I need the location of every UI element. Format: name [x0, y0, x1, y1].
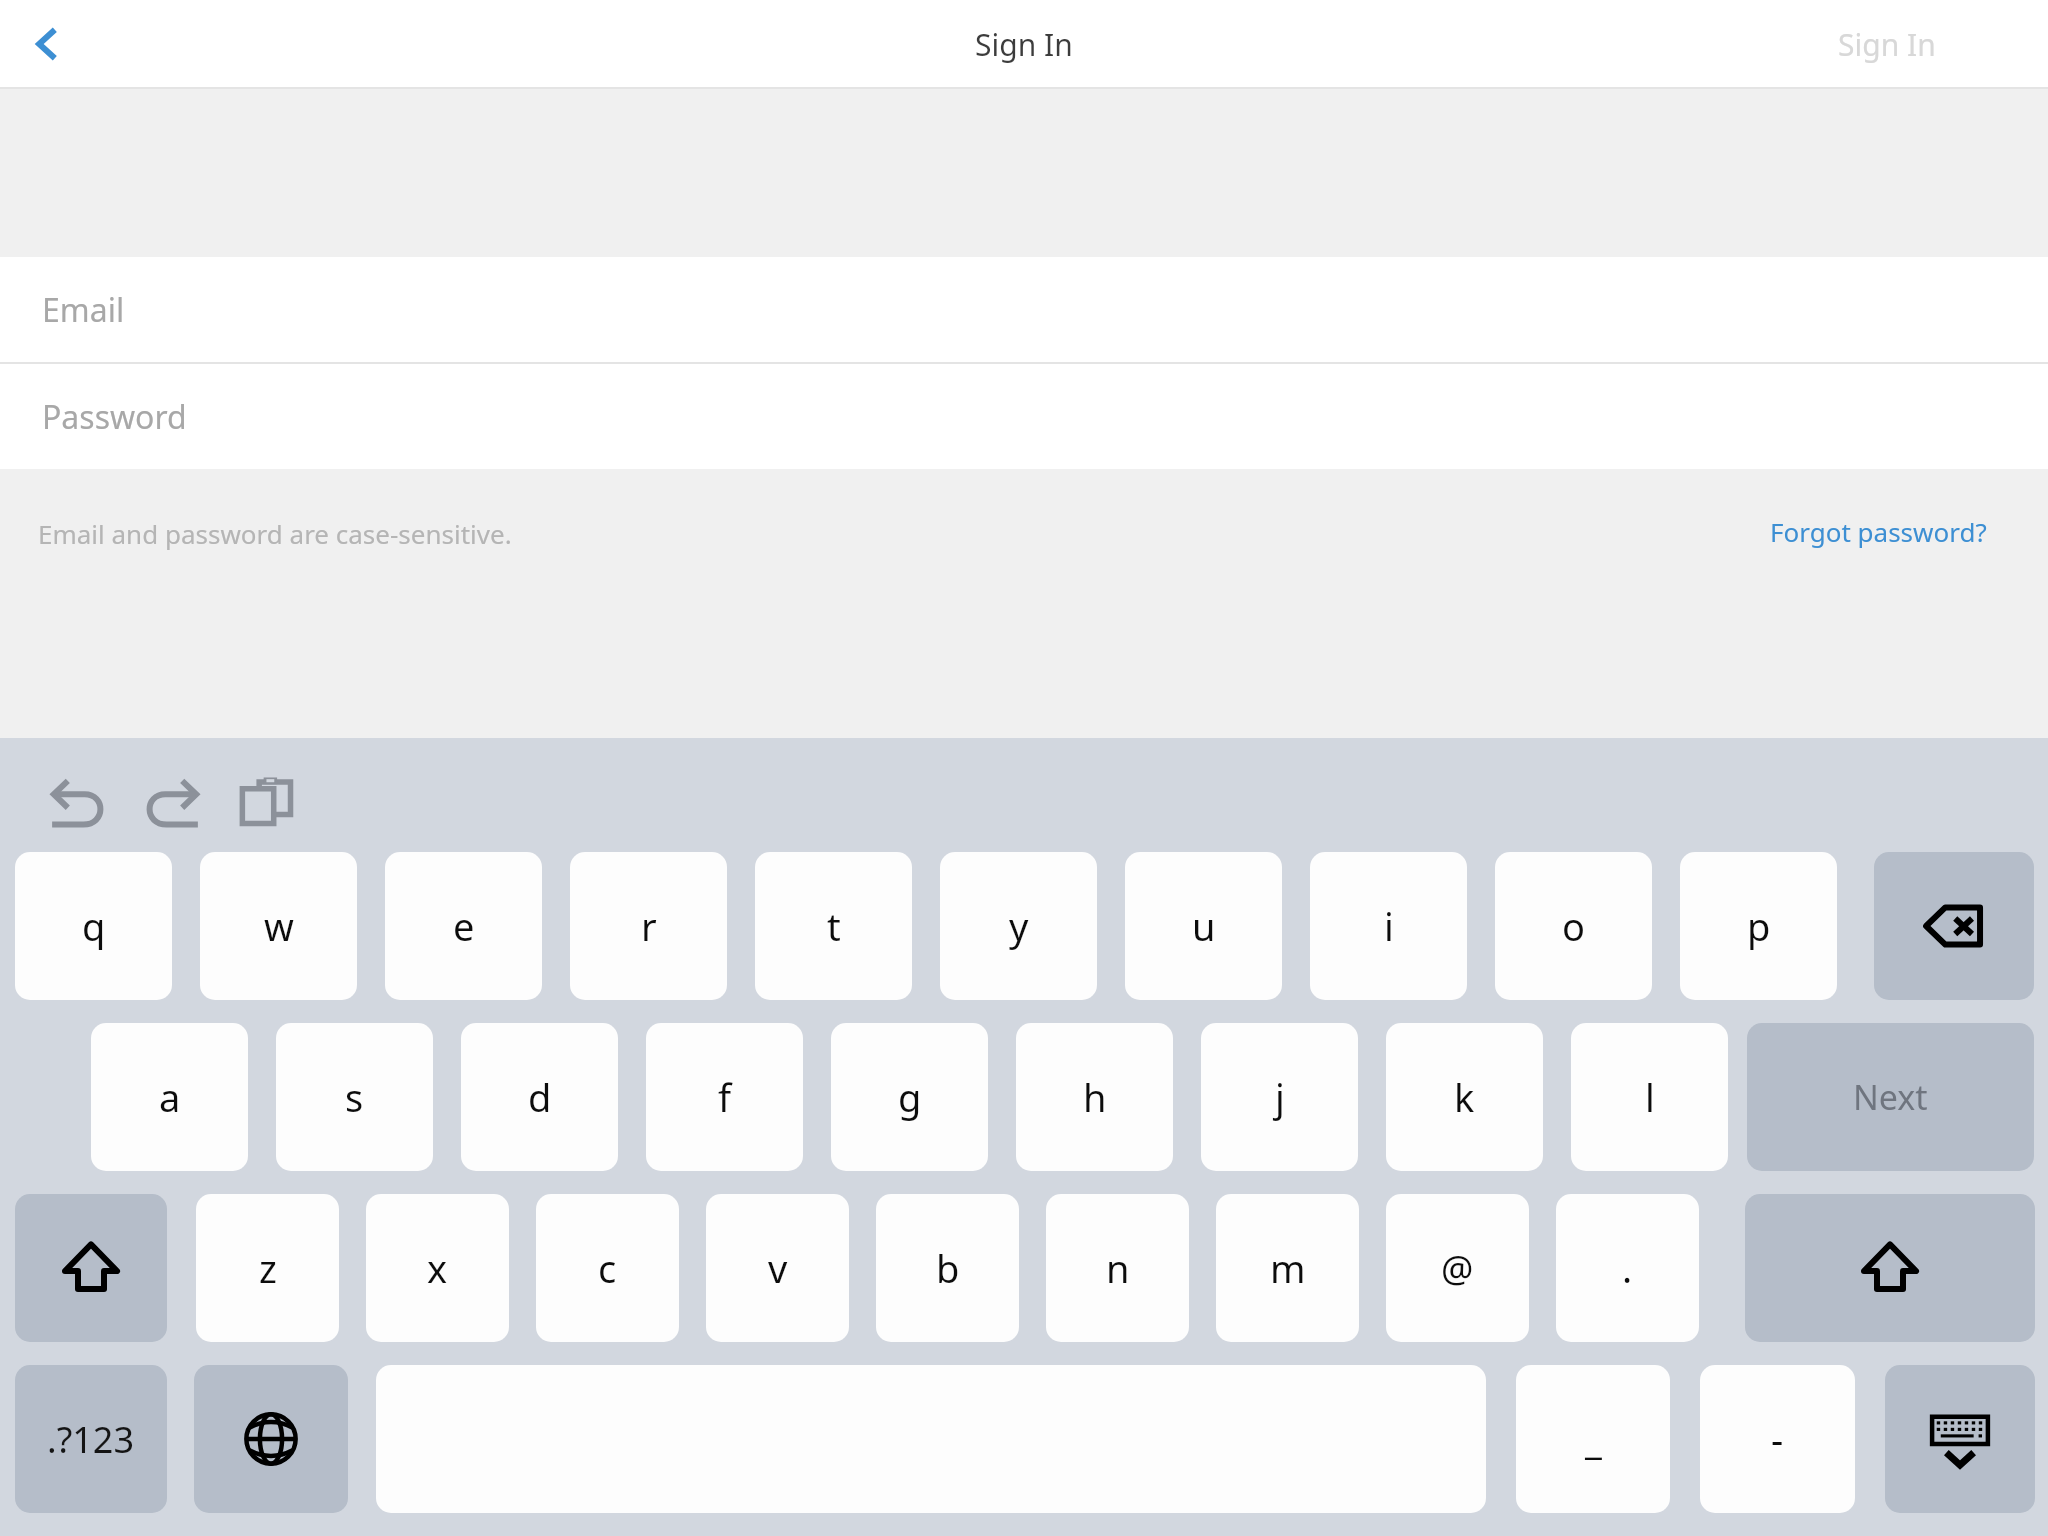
staticText: _ [1585, 1413, 1602, 1465]
staticText: r [641, 900, 657, 952]
staticText: g [898, 1071, 922, 1123]
button[interactable]: Password [0, 364, 2048, 469]
staticText: t [827, 900, 841, 952]
button[interactable]: . [1556, 1194, 1699, 1342]
staticText: u [1192, 900, 1216, 952]
staticText: v [768, 1242, 788, 1294]
button[interactable]: n [1046, 1194, 1189, 1342]
button[interactable]: v [706, 1194, 849, 1342]
staticText: l [1645, 1071, 1655, 1123]
staticText: i [1384, 900, 1394, 952]
button[interactable]: h [1016, 1023, 1173, 1171]
staticText: w [264, 900, 294, 952]
button[interactable]: l [1571, 1023, 1728, 1171]
button[interactable]: a [91, 1023, 248, 1171]
staticText: z [259, 1242, 277, 1294]
button[interactable]: Undo [40, 762, 118, 840]
button[interactable]: j [1201, 1023, 1358, 1171]
button[interactable]: Redo [132, 762, 210, 840]
button[interactable]: Sign In [1838, 0, 2048, 88]
staticText: k [1454, 1071, 1475, 1123]
staticText: f [718, 1071, 732, 1123]
button[interactable]: w [200, 852, 357, 1000]
button[interactable]: Next [1747, 1023, 2034, 1171]
staticText: s [345, 1071, 364, 1123]
staticText: m [1270, 1242, 1306, 1294]
button[interactable]: @ [1386, 1194, 1529, 1342]
staticText: . [1622, 1242, 1633, 1294]
button[interactable]: c [536, 1194, 679, 1342]
button[interactable]: r [570, 852, 727, 1000]
button[interactable]: q [15, 852, 172, 1000]
button[interactable]: x [366, 1194, 509, 1342]
staticText: .?123 [47, 1415, 135, 1464]
staticText: - [1771, 1413, 1784, 1465]
button[interactable]: Change keyboard [194, 1365, 348, 1513]
button[interactable]: o [1495, 852, 1652, 1000]
staticText: Email and password are case-sensitive. [38, 516, 512, 551]
staticText: Email [42, 288, 125, 332]
staticText: p [1747, 900, 1771, 952]
staticText: j [1275, 1071, 1285, 1123]
button[interactable]: _ [1516, 1365, 1670, 1513]
staticText: a [159, 1071, 181, 1123]
button[interactable]: u [1125, 852, 1282, 1000]
button[interactable]: b [876, 1194, 1019, 1342]
button[interactable]: .?123 [15, 1365, 167, 1513]
button[interactable]: p [1680, 852, 1837, 1000]
staticText: e [453, 900, 475, 952]
staticText: q [82, 900, 106, 952]
button[interactable]: s [276, 1023, 433, 1171]
button[interactable]: m [1216, 1194, 1359, 1342]
button[interactable]: g [831, 1023, 988, 1171]
staticText: o [1562, 900, 1585, 952]
staticText: @ [1441, 1244, 1474, 1293]
button[interactable]: Hide keyboard [1885, 1365, 2035, 1513]
staticText: h [1083, 1071, 1107, 1123]
button[interactable]: Paste [228, 762, 306, 840]
button[interactable]: k [1386, 1023, 1543, 1171]
staticText: y [1009, 900, 1029, 952]
staticText: Sign In [975, 24, 1073, 65]
button[interactable]: t [755, 852, 912, 1000]
staticText: Forgot password? [1770, 514, 1987, 549]
button[interactable]: Back [0, 0, 95, 88]
staticText: Sign In [1838, 24, 1936, 65]
staticText: n [1106, 1242, 1130, 1294]
button[interactable]: i [1310, 852, 1467, 1000]
staticText: d [528, 1071, 552, 1123]
staticText: c [598, 1242, 617, 1294]
button[interactable]: Email [0, 257, 2048, 362]
button[interactable]: e [385, 852, 542, 1000]
button[interactable]: y [940, 852, 1097, 1000]
button[interactable]: z [196, 1194, 339, 1342]
button[interactable]: Shift [15, 1194, 167, 1342]
staticText: x [427, 1242, 448, 1294]
staticText: Next [1853, 1074, 1928, 1120]
button[interactable]: Shift [1745, 1194, 2035, 1342]
button[interactable]: Backspace [1874, 852, 2034, 1000]
staticText: Password [42, 395, 187, 439]
button[interactable]: d [461, 1023, 618, 1171]
button[interactable]: - [1700, 1365, 1855, 1513]
staticText: b [936, 1242, 960, 1294]
button[interactable]: Forgot password? [1770, 500, 2030, 562]
button[interactable]: f [646, 1023, 803, 1171]
